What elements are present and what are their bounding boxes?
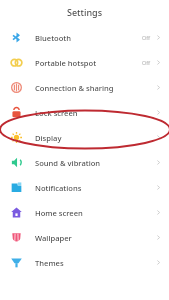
button[interactable]: Portable hotspot [0,50,169,75]
staticText: Settings [67,6,103,18]
staticText: Off [142,34,150,41]
button[interactable]: Bluetooth [0,25,169,50]
button[interactable]: Sound and vibration [0,150,169,175]
staticText: Bluetooth [35,33,71,43]
button[interactable]: Connection and sharing [0,75,169,100]
staticText: Connection & sharing [35,83,114,93]
staticText: Themes [35,258,64,268]
staticText: Portable hotspot [35,58,97,68]
button[interactable]: Wallpaper [0,225,169,250]
button[interactable]: Home screen [0,200,169,225]
staticText: Lock screen [35,108,78,118]
staticText: Wallpaper [35,233,72,243]
staticText: Home screen [35,208,83,218]
staticText: Sound & vibration [35,158,101,168]
staticText: Notifications [35,183,82,193]
staticText: Off [142,59,150,66]
button[interactable]: Themes [0,250,169,275]
button[interactable]: Notifications [0,175,169,200]
staticText: Display [35,133,62,143]
button[interactable]: Lock screen [0,100,169,125]
button[interactable]: Display [0,125,169,150]
